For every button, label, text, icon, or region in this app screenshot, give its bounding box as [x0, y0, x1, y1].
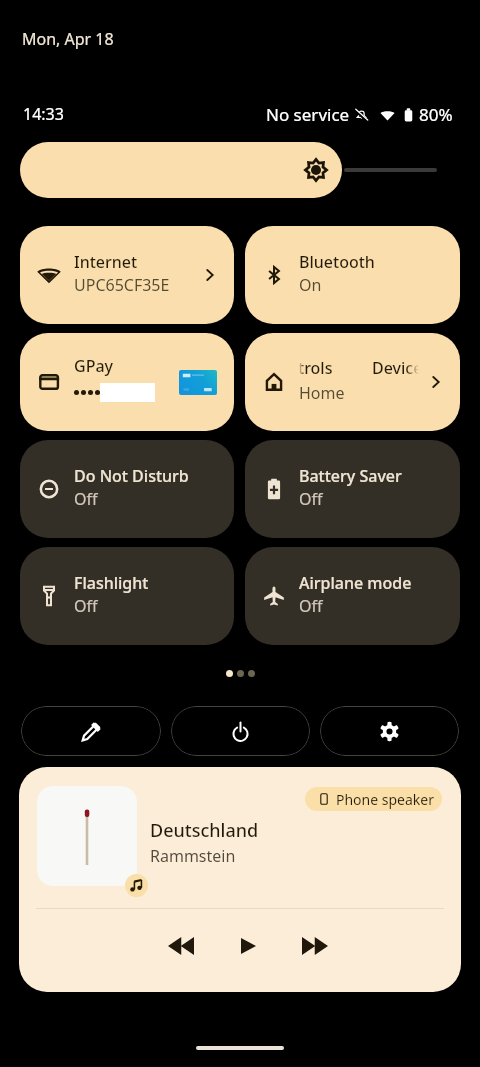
button[interactable]: Power — [171, 706, 310, 756]
staticText: Airplane mode — [299, 572, 412, 594]
button[interactable]: Edit — [21, 706, 161, 756]
button[interactable]: GPay — [20, 333, 234, 431]
button[interactable]: Next — [293, 924, 337, 968]
button[interactable]: Airplane mode — [245, 547, 460, 645]
button[interactable]: Play — [226, 924, 270, 968]
button[interactable]: Bluetooth — [245, 226, 460, 324]
staticText: On — [299, 274, 322, 296]
button[interactable]: Do Not Disturb — [20, 440, 234, 538]
button[interactable]: Brightness — [20, 142, 342, 198]
staticText: Flashlight — [74, 572, 149, 594]
button[interactable]: Settings — [320, 706, 459, 756]
button[interactable]: Previous — [159, 924, 203, 968]
staticText: Phone speaker — [336, 790, 434, 809]
staticText: 14:33 — [23, 103, 64, 125]
staticText: Off — [299, 595, 323, 617]
button[interactable]: Flashlight — [20, 547, 234, 645]
staticText: Bluetooth — [299, 251, 375, 273]
button[interactable]: Internet — [20, 226, 234, 324]
button[interactable]: Battery Saver — [245, 440, 460, 538]
staticText: trols — [299, 357, 333, 379]
staticText: Battery Saver — [299, 465, 402, 487]
button[interactable]: Phone speaker — [305, 787, 442, 811]
staticText: Device controls — [372, 357, 431, 379]
staticText: No service — [266, 103, 350, 126]
staticText: 80% — [419, 103, 453, 126]
staticText: Deutschland — [150, 818, 259, 843]
staticText: GPay — [74, 355, 113, 377]
button[interactable]: trols — [245, 333, 460, 431]
staticText: Do Not Disturb — [74, 465, 189, 487]
staticText: Rammstein — [150, 845, 236, 867]
staticText: Off — [299, 488, 323, 510]
staticText: Mon, Apr 18 — [22, 28, 114, 50]
staticText: Off — [74, 595, 98, 617]
staticText: Home — [299, 382, 345, 404]
staticText: Off — [74, 488, 98, 510]
staticText: Internet — [74, 251, 138, 273]
staticText: UPC65CF35E — [74, 274, 170, 296]
